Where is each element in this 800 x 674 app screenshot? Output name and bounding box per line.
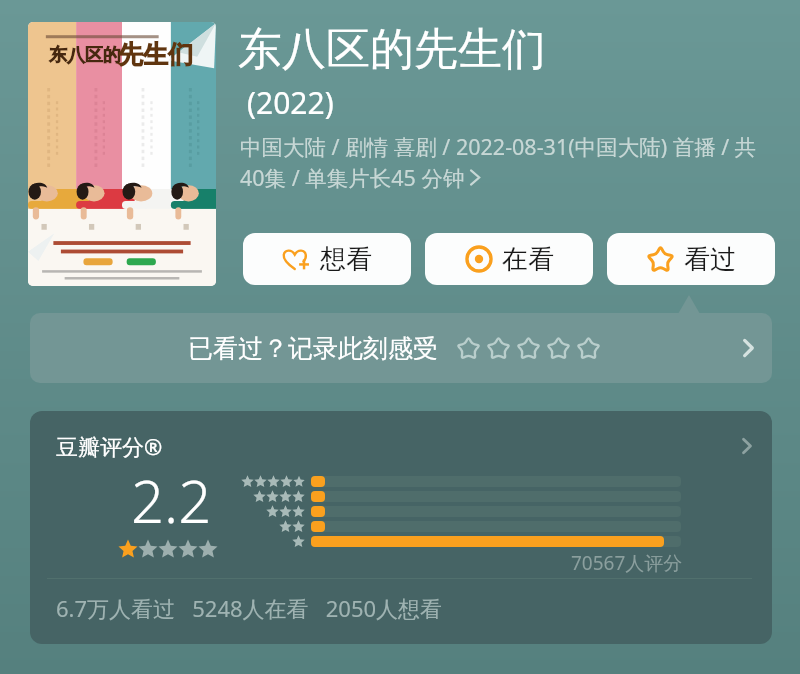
staticText: 70567人评分 <box>571 550 683 576</box>
staticText: 40集 / 单集片长45 分钟 <box>240 163 465 192</box>
button[interactable]: More ratings <box>742 438 752 454</box>
staticText: 东八区的 <box>49 44 121 67</box>
staticText: 2.2 <box>131 461 212 540</box>
staticText: 先生们 <box>118 39 193 70</box>
staticText: 中国大陆 / 剧情 喜剧 / 2022-08-31(中国大陆) 首播 / 共 <box>240 132 757 161</box>
button[interactable]: 在看 <box>425 233 593 285</box>
button[interactable]: 看过 <box>607 233 775 285</box>
staticText: 豆瓣评分® <box>56 431 163 461</box>
staticText: (2022) <box>247 82 334 123</box>
button[interactable]: 想看 <box>243 233 411 285</box>
staticText: 已看过？记录此刻感受 <box>188 333 438 364</box>
button[interactable]: 已看过？记录此刻感受 <box>30 313 772 383</box>
staticText: 东八区的先生们 <box>238 22 546 77</box>
staticText: 在看 <box>502 243 554 276</box>
staticText: 看过 <box>684 243 736 276</box>
staticText: 想看 <box>320 243 372 276</box>
staticText: 6.7万人看过 5248人在看 2050人想看 <box>56 593 443 623</box>
button[interactable]: 40集 / 单集片长45 分钟 <box>240 163 480 192</box>
